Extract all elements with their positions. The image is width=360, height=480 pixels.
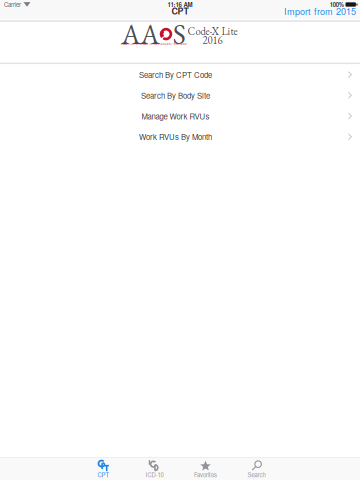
button[interactable]: CPT: [78, 457, 129, 480]
staticText: 100%: [330, 0, 344, 9]
staticText: Import from 2015: [284, 4, 356, 17]
staticText: Manage Work RVUs: [141, 110, 209, 122]
staticText: Search By Body Site: [141, 90, 210, 101]
staticText: Search: [247, 470, 265, 479]
staticText: Work RVUs By Month: [139, 131, 212, 142]
button[interactable]: Manage Work RVUs: [0, 106, 360, 126]
button[interactable]: Search: [231, 457, 282, 480]
staticText: 11:16 AM: [168, 0, 193, 9]
staticText: ICD-10: [145, 470, 163, 479]
button[interactable]: Work RVUs By Month: [0, 126, 360, 147]
button[interactable]: Search By CPT Code: [0, 64, 360, 85]
staticText: AMERICAN ACADEMY OF ORTHOPAEDIC SURGEONS: [120, 42, 186, 46]
staticText: Favorites: [194, 470, 217, 479]
staticText: Code-X Lite: [187, 24, 237, 38]
staticText: Search By CPT Code: [139, 69, 212, 80]
button[interactable]: Search By Body Site: [0, 85, 360, 106]
staticText: 2016: [202, 33, 222, 47]
button[interactable]: Import from 2015: [284, 3, 360, 18]
button[interactable]: ICD-10: [129, 457, 180, 480]
staticText: Carrier: [4, 0, 21, 9]
staticText: CPT: [97, 470, 109, 479]
staticText: S: [173, 16, 186, 52]
button[interactable]: Favorites: [180, 457, 231, 480]
staticText: CPT: [171, 5, 188, 17]
staticText: AA: [121, 16, 159, 52]
